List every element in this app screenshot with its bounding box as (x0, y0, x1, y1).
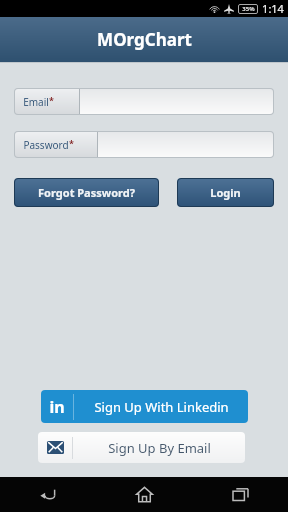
button[interactable]: in (41, 390, 248, 423)
button[interactable]: Sign Up By Email (38, 432, 245, 463)
button[interactable]: Password (15, 132, 273, 157)
button[interactable]: Login (177, 178, 274, 207)
staticText: * (69, 137, 74, 149)
button[interactable]: Recent apps (192, 477, 288, 512)
button[interactable]: Forgot Password? (14, 178, 159, 207)
staticText: 1:14 (262, 1, 284, 16)
button[interactable]: Email (15, 89, 273, 114)
staticText: Sign Up With Linkedin (94, 398, 229, 416)
staticText: * (49, 94, 54, 106)
staticText: 35% (242, 5, 255, 13)
staticText: Forgot Password? (38, 185, 135, 200)
staticText: Sign Up By Email (108, 439, 211, 457)
staticText: Login (210, 185, 241, 200)
staticText: Email (23, 95, 49, 109)
staticText: Password (23, 138, 69, 152)
button[interactable]: Back (0, 477, 96, 512)
staticText: in (49, 396, 65, 418)
staticText: MOrgChart (97, 28, 192, 51)
button[interactable]: Home (96, 477, 192, 512)
